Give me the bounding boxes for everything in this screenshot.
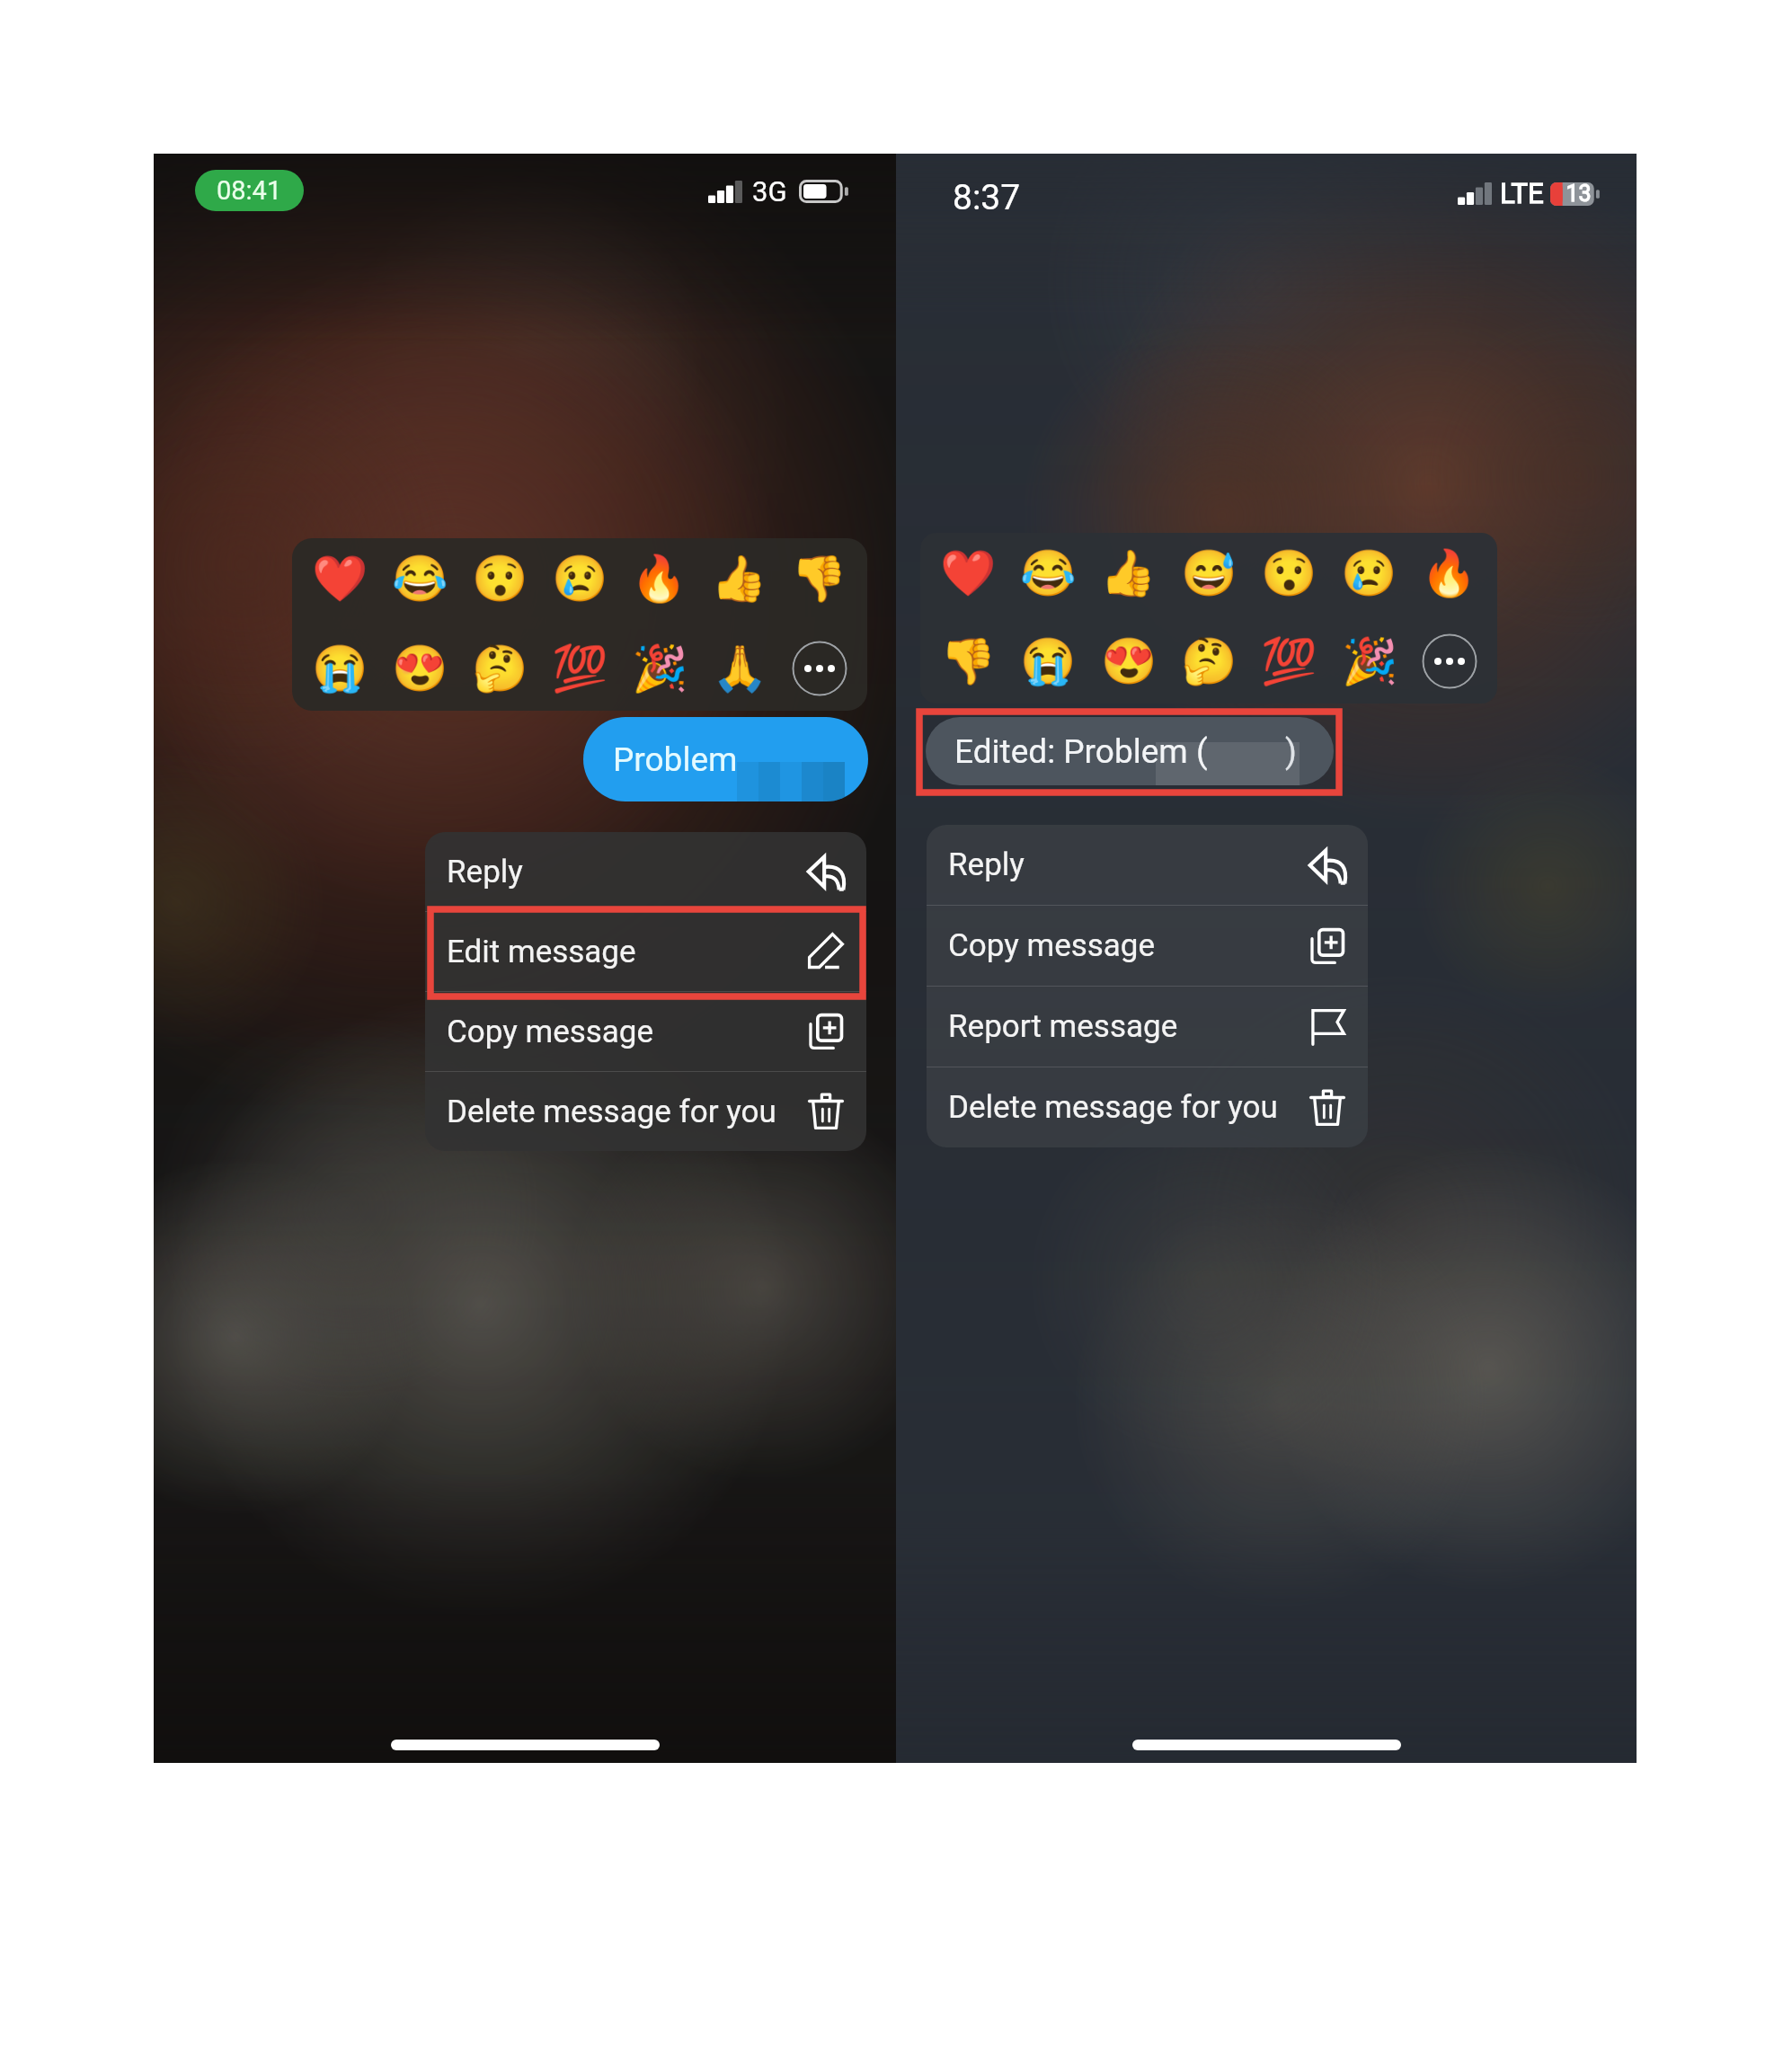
staticText: Delete message for you [447, 1094, 776, 1130]
staticText: Edit message [447, 934, 636, 970]
staticText: Copy message [447, 1014, 654, 1050]
staticText: 🤔 [1181, 635, 1238, 688]
staticText: 😯 [1261, 547, 1317, 600]
button[interactable]: React with thumbs down [940, 635, 997, 688]
button[interactable]: React with hushed face [1261, 547, 1317, 600]
button[interactable]: React with party popper [632, 642, 688, 695]
button[interactable]: Delete message for you [425, 1072, 866, 1151]
button[interactable]: React with heart [292, 538, 867, 711]
button[interactable]: Home [391, 1740, 660, 1750]
button[interactable]: React with heart eyes [1101, 635, 1158, 688]
button[interactable]: React with loudly crying face [1020, 635, 1077, 688]
staticText: 😭 [1020, 635, 1077, 688]
staticText: ❤️ [312, 553, 368, 606]
staticText: 🎉 [1342, 635, 1398, 688]
button[interactable]: Delete message for you [927, 1067, 1368, 1147]
staticText: 😯 [472, 553, 528, 606]
button[interactable]: Copy message [425, 992, 866, 1071]
staticText: 🔥 [631, 553, 688, 606]
button[interactable]: React with hushed face [472, 553, 528, 606]
staticText: Edited: Problem ( [954, 732, 1208, 771]
staticText: Delete message for you [948, 1089, 1278, 1126]
button[interactable]: React with party popper [1342, 635, 1398, 688]
button[interactable]: React with fire [1421, 547, 1477, 600]
staticText: 🔥 [1421, 547, 1477, 600]
button[interactable]: More reactions [1422, 633, 1477, 689]
button[interactable]: Report message [927, 987, 1368, 1067]
staticText: 🤔 [472, 642, 528, 695]
staticText: 13 [1566, 181, 1592, 207]
button[interactable]: React with thinking face [472, 642, 528, 695]
staticText: LTE [1500, 177, 1544, 209]
button[interactable]: React with grinning face with sweat [1181, 547, 1238, 600]
button[interactable]: React with folded hands [712, 642, 768, 695]
button[interactable]: React with crying face [1341, 547, 1397, 600]
staticText: Report message [948, 1008, 1178, 1045]
staticText: Reply [447, 854, 523, 890]
button[interactable]: React with thinking face [1181, 635, 1238, 688]
button[interactable]: React with fire [631, 553, 688, 606]
staticText: 👎 [940, 635, 997, 688]
button[interactable]: React with loudly crying face [312, 642, 368, 695]
button[interactable]: React with heart [940, 547, 997, 600]
button[interactable]: Edited: Problem ( [926, 717, 1334, 785]
button[interactable]: React with thumbs up [1100, 547, 1157, 600]
button[interactable]: Home [1132, 1740, 1401, 1750]
button[interactable]: React with tears of joy [392, 553, 448, 606]
staticText: 👍 [711, 553, 767, 606]
staticText: 😢 [552, 553, 608, 606]
staticText: 💯 [552, 642, 608, 695]
button[interactable]: More reactions [792, 641, 847, 696]
staticText: 👍 [1100, 547, 1157, 600]
staticText: 😂 [1020, 547, 1077, 600]
staticText: 💯 [1261, 635, 1317, 688]
button[interactable]: React with hundred points [1261, 635, 1317, 688]
staticText: Problem [613, 740, 738, 779]
staticText: 😂 [392, 553, 448, 606]
button[interactable]: React with thumbs up [711, 553, 767, 606]
staticText: 😢 [1341, 547, 1397, 600]
staticText: 08:41 [217, 175, 282, 206]
button[interactable]: React with heart [920, 533, 1497, 704]
button[interactable]: React with hundred points [552, 642, 608, 695]
button[interactable]: Copy message [927, 906, 1368, 986]
staticText: 🎉 [632, 642, 688, 695]
staticText: 8:37 [953, 177, 1021, 217]
button[interactable]: Recording indicator 08:41 [195, 170, 304, 211]
staticText: 🙏 [712, 642, 768, 695]
staticText: 😅 [1181, 547, 1238, 600]
button[interactable]: Reply [927, 825, 1368, 905]
staticText: 😍 [1101, 635, 1158, 688]
staticText: ❤️ [940, 547, 997, 600]
staticText: 😭 [312, 642, 368, 695]
button[interactable]: Edit message [425, 912, 866, 991]
staticText: Copy message [948, 927, 1156, 964]
button[interactable]: React with heart eyes [392, 642, 448, 695]
staticText: ) [1285, 732, 1297, 771]
staticText: Reply [948, 846, 1025, 883]
button[interactable]: Problem [583, 717, 868, 801]
staticText: 😍 [392, 642, 448, 695]
button[interactable]: React with heart [312, 553, 368, 606]
button[interactable]: React with crying face [552, 553, 608, 606]
staticText: 👎 [791, 553, 847, 606]
staticText: 3G [752, 175, 787, 208]
button[interactable]: Reply [425, 832, 866, 911]
button[interactable]: React with thumbs down [791, 553, 847, 606]
button[interactable]: React with tears of joy [1020, 547, 1077, 600]
